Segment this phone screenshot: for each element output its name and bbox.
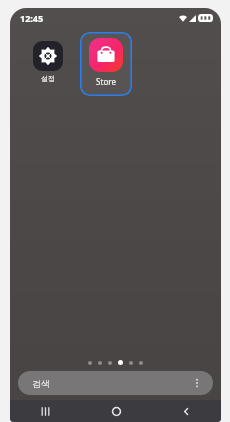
- button[interactable]: Back: [151, 400, 221, 422]
- button[interactable]: Home: [81, 400, 151, 422]
- button[interactable]: 검색: [18, 371, 213, 395]
- staticText: Store: [96, 76, 116, 87]
- button[interactable]: Store: [80, 32, 132, 96]
- staticText: 검색: [32, 378, 50, 389]
- button[interactable]: More options: [189, 375, 205, 391]
- staticText: 설정: [41, 74, 55, 83]
- button[interactable]: Recent apps: [10, 400, 81, 422]
- button[interactable]: 설정: [22, 32, 74, 83]
- staticText: 12:45: [20, 12, 44, 24]
